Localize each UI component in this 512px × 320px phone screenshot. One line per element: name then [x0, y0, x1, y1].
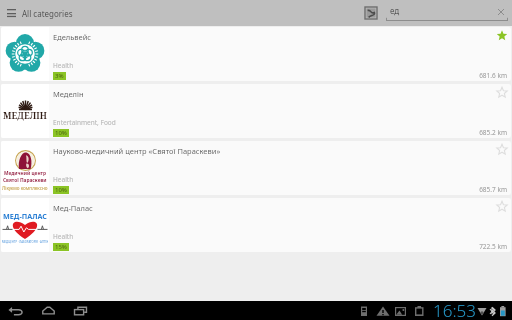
staticText: Медичний центр [4, 170, 47, 177]
staticText: МЕД-ПАЛАС [3, 211, 47, 221]
staticText: Entertainment, Food [53, 118, 116, 127]
staticText: All categories [22, 8, 73, 19]
staticText: 10% [55, 129, 67, 137]
staticText: 10% [55, 186, 67, 194]
staticText: МЕДЕЛІН [3, 110, 47, 122]
staticText: 15% [55, 243, 67, 251]
button[interactable]: Медичний центр [1, 141, 511, 195]
button[interactable]: Show on map [362, 3, 380, 23]
staticText: Святої Параскеви [3, 177, 47, 184]
staticText: Меделін [53, 89, 84, 99]
staticText: МЕДЦЕНТР · ЛАБОРАТОРІЯ · АПТЕКА [2, 240, 48, 244]
staticText: 3% [55, 72, 64, 80]
button[interactable]: Add to favourites [495, 199, 509, 213]
button[interactable]: Recent apps [67, 301, 93, 320]
staticText: Health [53, 232, 74, 241]
button[interactable]: Clear search [494, 5, 508, 19]
staticText: 685.7 km [479, 185, 507, 194]
staticText: Мед-Палас [53, 203, 93, 213]
button[interactable]: Open navigation drawer [0, 0, 22, 26]
staticText: Едельвейс [53, 32, 92, 42]
button[interactable]: Add to favourites [495, 28, 509, 42]
staticText: 681.6 km [479, 71, 507, 80]
staticText: 685.2 km [479, 128, 507, 137]
button[interactable]: Add to favourites [495, 85, 509, 99]
staticText: Health [53, 61, 74, 70]
staticText: 722.5 km [479, 242, 507, 251]
staticText: Лікуємо комплексно [2, 185, 48, 191]
button[interactable]: Add to favourites [495, 142, 509, 156]
staticText: 16:53 [433, 299, 476, 318]
button[interactable]: МЕД-ПАЛАС [1, 198, 511, 252]
button[interactable]: МЕДЕЛІН [1, 84, 511, 138]
staticText: Науково-медичний центр «Святої Параскеви… [53, 146, 221, 156]
staticText: ед [390, 5, 400, 16]
button[interactable]: Back [3, 301, 29, 320]
button[interactable]: Home [35, 301, 61, 320]
staticText: Health [53, 175, 74, 184]
button[interactable]: Едельвейс [1, 27, 511, 81]
